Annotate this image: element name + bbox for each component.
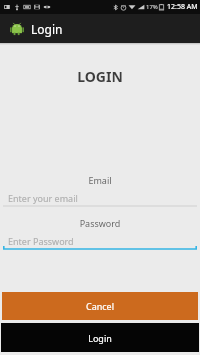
staticText: Login xyxy=(31,21,63,37)
staticText: Cancel xyxy=(2,300,198,312)
staticText: LOGIN xyxy=(0,67,200,86)
button[interactable]: Cancel xyxy=(2,292,198,320)
button[interactable]: Email input xyxy=(0,190,200,209)
staticText: 12:58 AM xyxy=(167,2,198,12)
staticText: Enter your email xyxy=(8,192,78,204)
button[interactable]: Password input xyxy=(0,233,200,252)
button[interactable]: Login xyxy=(1,323,199,352)
staticText: Enter Password xyxy=(8,235,74,247)
staticText: Email xyxy=(0,174,200,186)
staticText: Password xyxy=(0,217,200,229)
other: App icon xyxy=(9,21,25,37)
staticText: Login xyxy=(1,332,199,344)
staticText: 17% xyxy=(146,3,158,11)
